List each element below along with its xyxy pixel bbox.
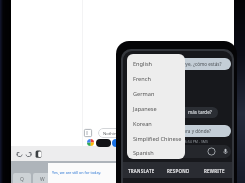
staticText: TRANSLATE (128, 168, 155, 174)
staticText: más tarde? (188, 109, 212, 115)
button[interactable]: Emoji (207, 147, 216, 156)
button[interactable]: Undo (15, 150, 25, 159)
staticText: W (40, 176, 45, 183)
staticText: Q (20, 176, 24, 183)
button[interactable]: Korean (127, 116, 185, 131)
staticText: French (133, 75, 151, 83)
staticText: RESPOND (167, 168, 190, 174)
button[interactable]: Spanish (127, 146, 185, 159)
button[interactable] (137, 145, 231, 158)
button[interactable]: English (127, 56, 185, 71)
button[interactable]: French (127, 71, 185, 86)
staticText: Spanish (133, 149, 154, 157)
button[interactable]: Search (96, 139, 111, 147)
button[interactable]: Voice input (221, 147, 230, 156)
staticText: Yes, we are still on for today. (52, 170, 102, 175)
button[interactable]: RESPOND (160, 165, 196, 176)
staticText: Korean (133, 120, 152, 128)
button[interactable]: Redo (24, 150, 34, 159)
staticText: Nothing m (103, 131, 125, 137)
button[interactable]: Colors (87, 139, 94, 146)
button[interactable]: Japanese (127, 101, 185, 116)
button[interactable]: Q (13, 173, 31, 183)
button[interactable]: REWRITE (196, 165, 232, 176)
staticText: Sep 13, 6:54 PM - SMS (172, 139, 208, 144)
button[interactable]: Nothing m (98, 128, 140, 138)
staticText: Japanese (133, 105, 157, 113)
staticText: REWRITE (204, 168, 225, 174)
button[interactable]: German (127, 86, 185, 101)
staticText: English (133, 60, 153, 68)
staticText: Simplified Chinese (133, 135, 182, 143)
staticText: German (133, 90, 155, 98)
button[interactable]: W (33, 173, 51, 183)
button[interactable]: Columns (84, 129, 92, 137)
staticText: qué hora y dónde? (171, 128, 212, 134)
button[interactable]: Paste (35, 150, 43, 159)
button[interactable]: TRANSLATE (123, 165, 160, 176)
button[interactable]: Translate (112, 139, 127, 147)
button[interactable]: Simplified Chinese (127, 131, 185, 146)
staticText: Oye, ¿cómo estás? (182, 61, 222, 67)
button[interactable]: Yes, we are still on for today. (48, 163, 138, 183)
